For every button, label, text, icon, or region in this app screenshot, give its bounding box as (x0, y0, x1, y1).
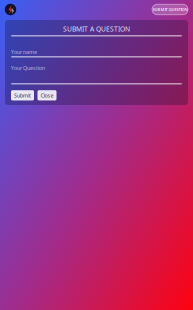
button[interactable]: Close (37, 90, 56, 100)
staticText: Close (40, 92, 53, 99)
staticText: Submit (14, 92, 31, 99)
button[interactable]: SUBMIT QUESTION (152, 4, 188, 15)
button[interactable]: Home (0, 0, 20, 19)
staticText: SUBMIT QUESTION (152, 7, 187, 12)
staticText: Your Question (11, 64, 45, 72)
staticText: Your name (11, 48, 37, 56)
button[interactable]: Submit (11, 90, 34, 100)
staticText: SUBMIT A QUESTION (63, 24, 130, 33)
